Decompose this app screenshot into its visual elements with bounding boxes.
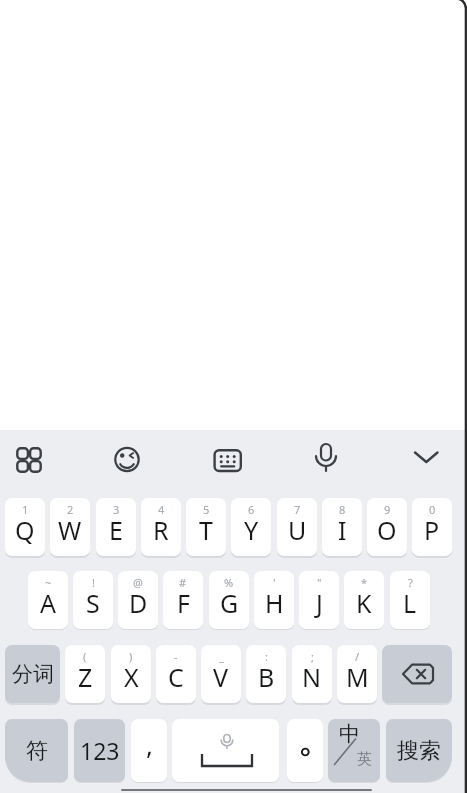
staticText: H xyxy=(265,586,284,620)
staticText: ) xyxy=(129,649,133,664)
button[interactable]: 5 xyxy=(186,498,226,556)
staticText: 搜索 xyxy=(397,737,441,765)
staticText: 9 xyxy=(384,502,391,517)
button[interactable]: - xyxy=(156,645,196,703)
staticText: O xyxy=(377,513,397,547)
staticText: 分词 xyxy=(12,661,54,687)
button[interactable]: ( xyxy=(65,645,105,703)
button[interactable] xyxy=(172,719,279,782)
staticText: Y xyxy=(244,513,259,547)
button[interactable]: 3 xyxy=(96,498,136,556)
button[interactable]: 中 xyxy=(328,719,380,782)
staticText: V xyxy=(213,660,229,694)
staticText: 8 xyxy=(339,502,346,517)
button[interactable]: 8 xyxy=(322,498,362,556)
staticText: U xyxy=(288,513,307,547)
staticText: K xyxy=(356,586,372,620)
staticText: , xyxy=(146,727,153,762)
staticText: - xyxy=(174,649,178,664)
button[interactable]: 1 xyxy=(5,498,45,556)
staticText: ~ xyxy=(45,575,52,590)
button[interactable]: ? xyxy=(390,571,430,629)
button[interactable]: ; xyxy=(292,645,332,703)
staticText: 7 xyxy=(294,502,301,517)
button[interactable]: 6 xyxy=(231,498,271,556)
button[interactable]: " xyxy=(299,571,339,629)
staticText: G xyxy=(220,586,239,620)
staticText: J xyxy=(316,586,323,620)
staticText: 0 xyxy=(429,502,436,517)
staticText: C xyxy=(168,660,184,694)
button[interactable]: * xyxy=(344,571,384,629)
staticText: N xyxy=(302,660,322,694)
staticText: I xyxy=(338,513,347,547)
staticText: P xyxy=(424,513,440,547)
staticText: _ xyxy=(219,649,224,664)
button[interactable]: 分词 xyxy=(5,645,60,703)
button[interactable]: : xyxy=(246,645,286,703)
button[interactable]: 4 xyxy=(141,498,181,556)
button[interactable] xyxy=(204,436,252,484)
button[interactable]: 2 xyxy=(50,498,90,556)
staticText: ' xyxy=(273,575,276,590)
staticText: ; xyxy=(311,649,314,664)
button[interactable] xyxy=(382,645,452,703)
button[interactable]: / xyxy=(337,645,377,703)
staticText: ( xyxy=(83,649,87,664)
button[interactable]: 9 xyxy=(367,498,407,556)
staticText: A xyxy=(40,586,56,620)
button[interactable]: 7 xyxy=(277,498,317,556)
button[interactable]: ) xyxy=(111,645,151,703)
staticText: R xyxy=(153,513,169,547)
button[interactable]: ' xyxy=(254,571,294,629)
staticText: 6 xyxy=(248,502,255,517)
staticText: : xyxy=(265,649,268,664)
staticText: F xyxy=(177,586,190,620)
staticText: 2 xyxy=(67,502,74,517)
staticText: / xyxy=(355,649,360,664)
staticText: L xyxy=(403,586,417,620)
staticText: 4 xyxy=(158,502,165,517)
staticText: E xyxy=(109,513,123,547)
button[interactable]: ! xyxy=(73,571,113,629)
button[interactable] xyxy=(5,436,53,484)
staticText: Q xyxy=(15,513,35,547)
button[interactable]: 0 xyxy=(412,498,452,556)
button[interactable]: 123 xyxy=(74,719,125,782)
staticText: 符 xyxy=(26,737,48,765)
staticText: ! xyxy=(92,575,95,590)
staticText: B xyxy=(258,660,275,694)
staticText: W xyxy=(58,513,82,547)
staticText: @ xyxy=(133,575,143,590)
button[interactable]: # xyxy=(163,571,203,629)
staticText: Z xyxy=(78,660,93,694)
staticText: ? xyxy=(408,575,413,590)
staticText: % xyxy=(224,575,234,590)
staticText: * xyxy=(361,575,368,590)
button[interactable]: 符 xyxy=(5,719,68,782)
button[interactable]: ~ xyxy=(28,571,68,629)
button[interactable] xyxy=(287,719,323,782)
button[interactable]: @ xyxy=(118,571,158,629)
button[interactable]: % xyxy=(209,571,249,629)
staticText: 1 xyxy=(22,502,29,517)
button[interactable] xyxy=(302,436,350,484)
button[interactable]: _ xyxy=(201,645,241,703)
button[interactable] xyxy=(402,436,450,484)
staticText: M xyxy=(346,660,369,694)
staticText: 中 xyxy=(339,721,360,747)
staticText: # xyxy=(179,575,187,590)
staticText: 123 xyxy=(80,735,120,766)
staticText: " xyxy=(317,575,322,590)
staticText: D xyxy=(129,586,148,620)
staticText: T xyxy=(199,513,213,547)
staticText: 英 xyxy=(357,750,372,769)
button[interactable] xyxy=(103,436,151,484)
staticText: 3 xyxy=(113,502,120,517)
staticText: S xyxy=(86,586,100,620)
button[interactable]: , xyxy=(131,719,167,782)
button[interactable]: 搜索 xyxy=(386,719,452,782)
staticText: X xyxy=(124,660,139,694)
staticText: 5 xyxy=(203,502,210,517)
